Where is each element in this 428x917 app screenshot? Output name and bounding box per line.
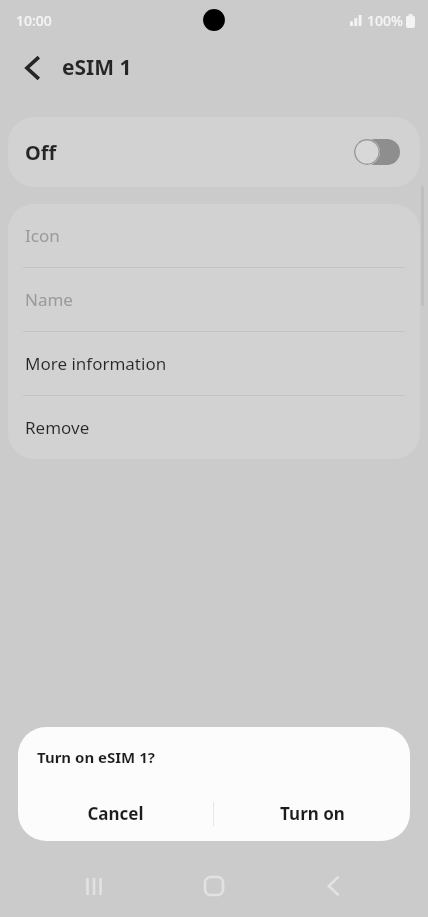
button[interactable]: Name (8, 268, 420, 331)
button[interactable]: Back (10, 45, 56, 91)
button[interactable]: Recents (71, 863, 117, 909)
staticText: More information (25, 352, 167, 375)
button[interactable]: Toggle eSIM (350, 135, 404, 169)
button[interactable]: Remove (8, 396, 420, 459)
staticText: Icon (25, 224, 60, 247)
staticText: Off (25, 139, 57, 166)
staticText: Turn on eSIM 1? (37, 747, 155, 767)
staticText: Turn on (280, 802, 345, 825)
button[interactable]: Cancel (18, 786, 213, 841)
staticText: 100% (367, 11, 403, 30)
button[interactable]: Turn on (214, 786, 410, 841)
staticText: Remove (25, 416, 90, 439)
staticText: Cancel (87, 802, 144, 825)
staticText: Name (25, 288, 73, 311)
staticText: 10:00 (16, 11, 52, 30)
button[interactable]: Off (8, 117, 420, 187)
button[interactable]: Back (310, 863, 356, 909)
button[interactable]: More information (8, 332, 420, 395)
button[interactable]: Home (191, 863, 237, 909)
staticText: eSIM 1 (62, 53, 132, 82)
button[interactable]: Icon (8, 204, 420, 267)
